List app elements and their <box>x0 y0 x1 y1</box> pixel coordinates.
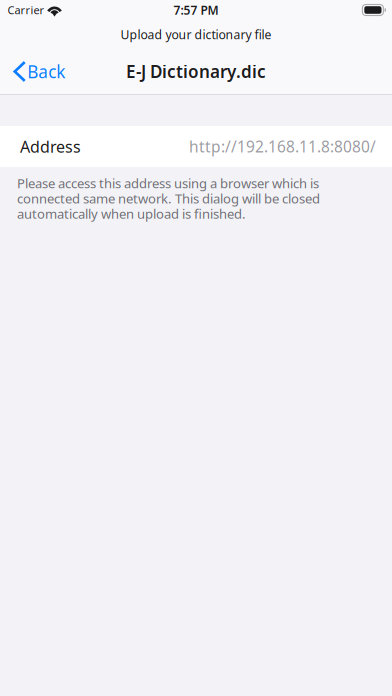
staticText: 7:57 PM <box>173 2 218 18</box>
staticText: Back <box>27 60 65 83</box>
staticText: Please access this address using a brows… <box>17 174 319 192</box>
button[interactable]: Back <box>0 49 75 94</box>
button[interactable]: Address <box>0 126 392 167</box>
staticText: http://192.168.11.8:8080/ <box>189 136 376 157</box>
staticText: Address <box>20 136 81 157</box>
staticText: E-J Dictionary.dic <box>126 60 266 83</box>
staticText: Carrier <box>7 3 44 17</box>
staticText: connected same network. This dialog will… <box>17 190 320 207</box>
staticText: automatically when upload is finished. <box>17 205 246 222</box>
staticText: Upload your dictionary file <box>120 26 271 43</box>
